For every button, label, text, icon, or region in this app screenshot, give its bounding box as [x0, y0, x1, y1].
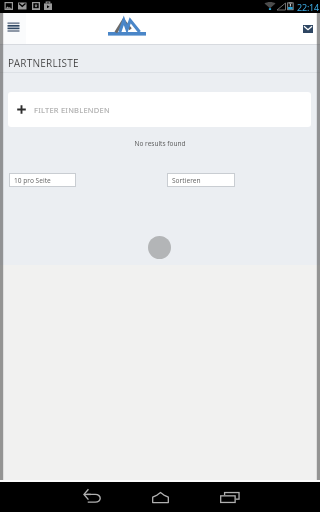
- button[interactable]: Home: [136, 482, 184, 512]
- staticText: No results found: [0, 139, 320, 148]
- button[interactable]: Sortieren: [167, 173, 235, 187]
- button[interactable]: 10 pro Seite: [9, 173, 76, 187]
- staticText: 22:14: [297, 1, 320, 13]
- button[interactable]: Recents: [204, 482, 252, 512]
- button[interactable]: Back: [68, 482, 116, 512]
- button[interactable]: Menu: [2, 13, 26, 45]
- staticText: FILTER EINBLENDEN: [34, 105, 110, 115]
- staticText: 10 pro Seite: [14, 176, 51, 185]
- button[interactable]: Mail: [296, 13, 320, 45]
- button[interactable]: FILTER EINBLENDEN: [8, 92, 311, 127]
- staticText: Sortieren: [172, 176, 201, 185]
- staticText: PARTNERLISTE: [8, 56, 79, 70]
